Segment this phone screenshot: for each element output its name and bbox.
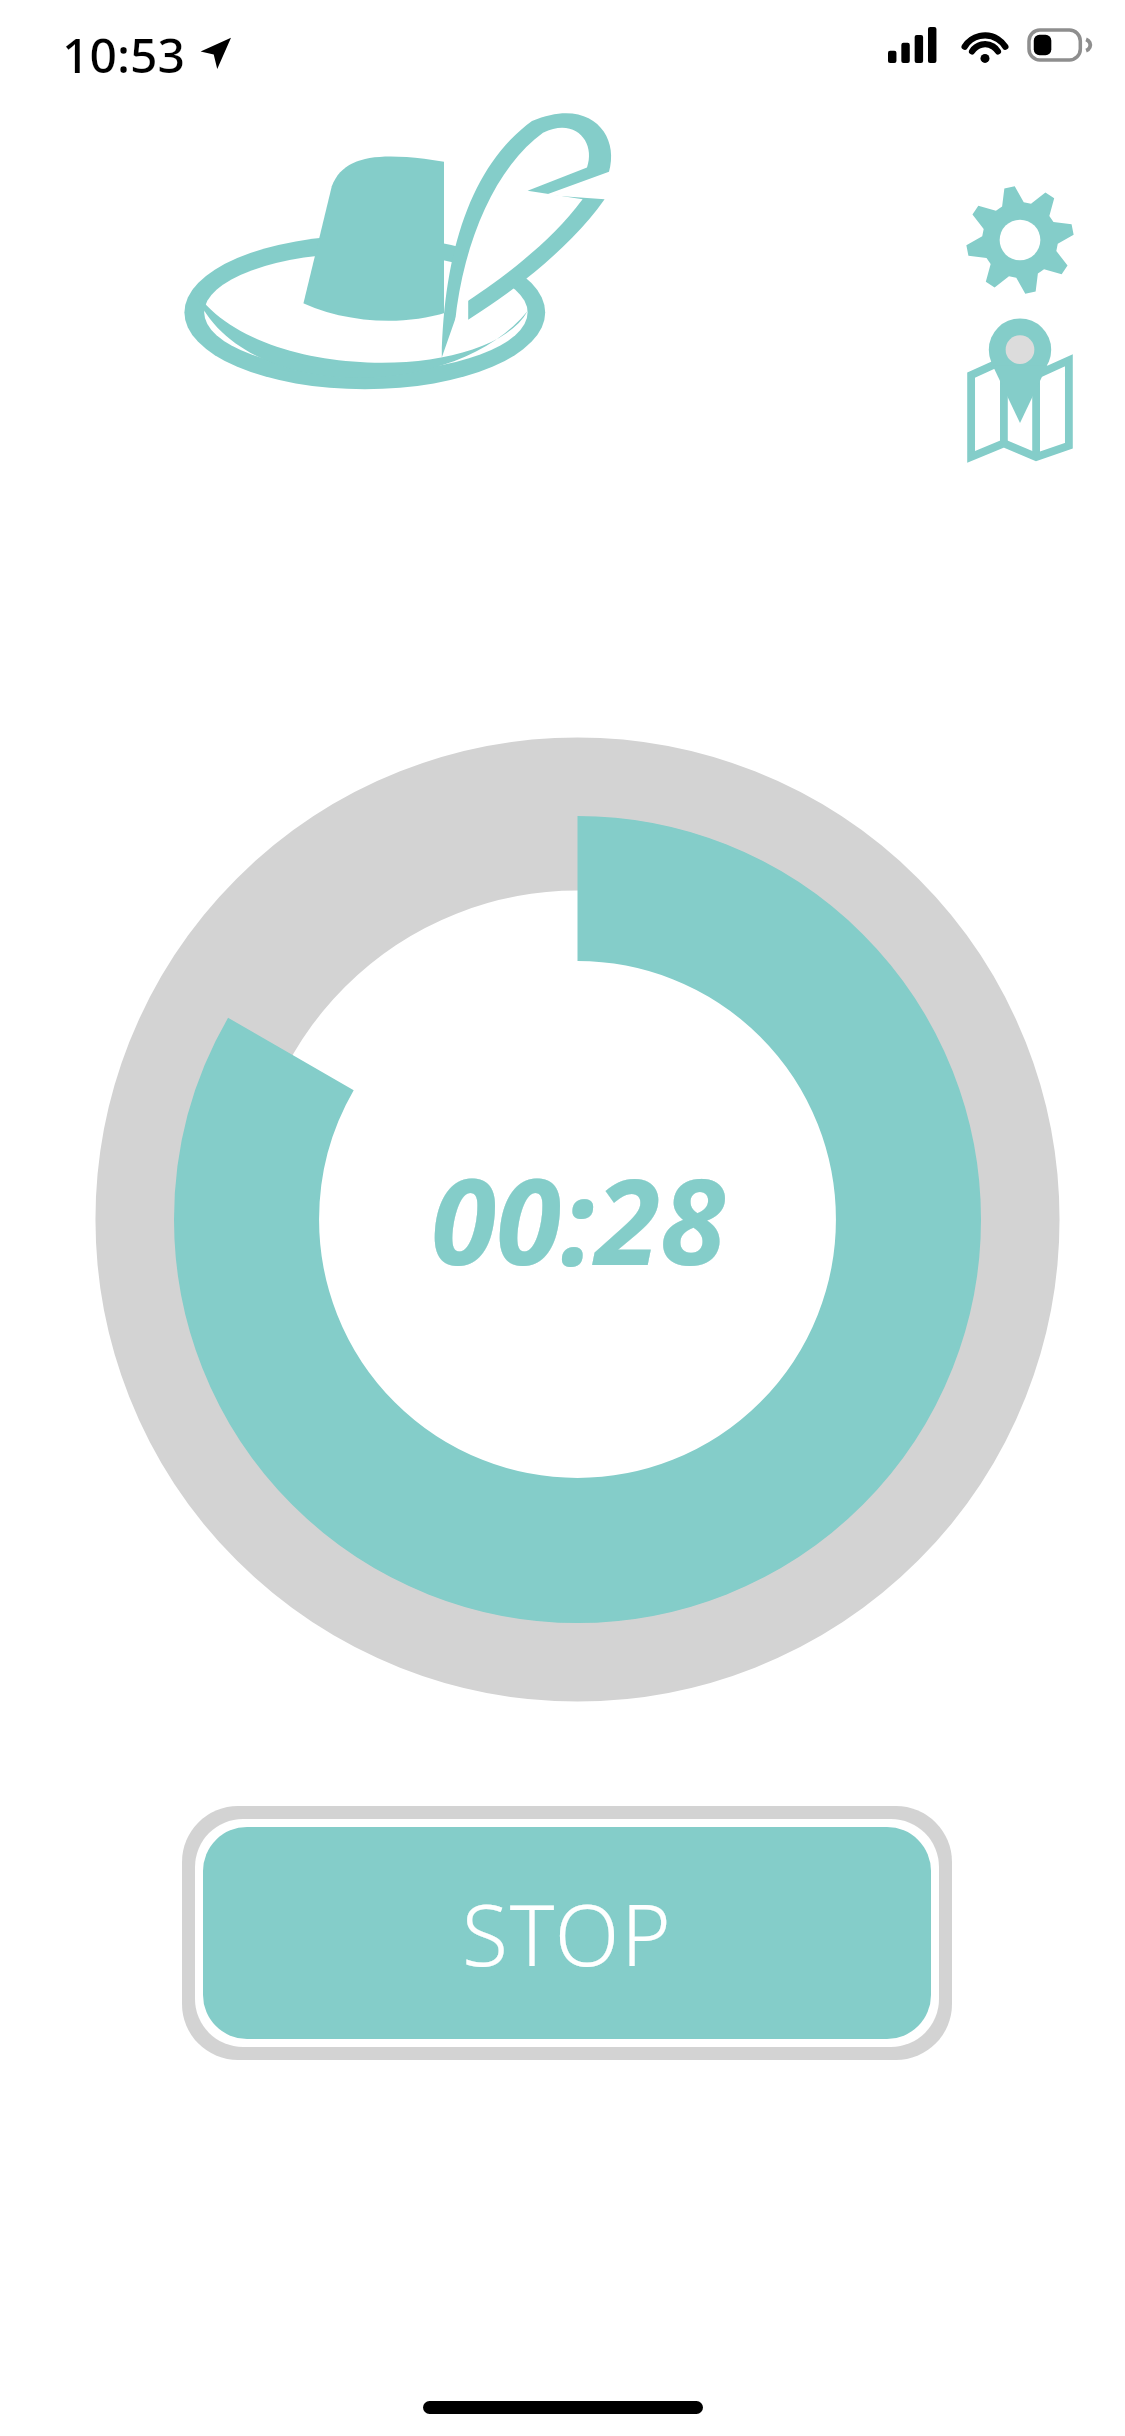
button[interactable]: STOP	[182, 1806, 952, 2060]
button[interactable]: Map	[950, 320, 1090, 460]
staticText: 10:53	[62, 22, 185, 87]
staticText: 00:28	[431, 1139, 725, 1300]
staticText: STOP	[462, 1876, 673, 1990]
button[interactable]: Settings	[950, 170, 1090, 310]
